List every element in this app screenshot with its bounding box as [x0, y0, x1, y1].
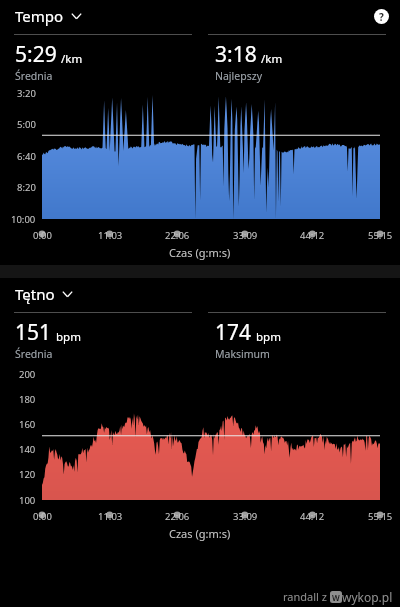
staticText: ? — [379, 10, 384, 24]
staticText: Najlepszy — [215, 69, 262, 83]
button[interactable]: Tempo — [0, 4, 92, 28]
staticText: bpm — [256, 329, 281, 345]
staticText: 200 — [19, 368, 36, 381]
staticText: 151 — [15, 318, 52, 347]
staticText: randall z — [283, 589, 330, 604]
staticText: 44:12 — [300, 510, 325, 523]
button[interactable]: Tętno — [0, 282, 83, 306]
staticText: 33:09 — [233, 229, 258, 242]
staticText: 160 — [19, 418, 36, 431]
staticText: 0:00 — [33, 229, 52, 242]
staticText: 5:00 — [17, 118, 36, 131]
staticText: 140 — [19, 443, 36, 456]
staticText: 22:06 — [165, 510, 190, 523]
staticText: 5:29 — [15, 40, 57, 69]
staticText: Tętno — [15, 284, 55, 304]
staticText: 55:15 — [368, 229, 393, 242]
staticText: 174 — [215, 318, 252, 347]
staticText: Czas (g:m:s) — [169, 526, 231, 541]
staticText: Czas (g:m:s) — [169, 245, 231, 260]
staticText: 55:15 — [368, 510, 393, 523]
staticText: /km — [261, 51, 283, 67]
staticText: W — [332, 592, 340, 603]
staticText: 100 — [19, 494, 36, 507]
staticText: 6:40 — [17, 150, 36, 163]
staticText: /km — [61, 51, 83, 67]
staticText: bpm — [56, 329, 81, 345]
staticText: 22:06 — [165, 229, 190, 242]
staticText: Średnia — [15, 69, 53, 83]
staticText: 120 — [19, 468, 36, 481]
button[interactable]: Help — [368, 3, 394, 29]
staticText: Tempo — [15, 6, 64, 26]
staticText: 10:00 — [11, 213, 36, 226]
staticText: 33:09 — [233, 510, 258, 523]
staticText: 8:20 — [17, 181, 36, 194]
staticText: 11:03 — [98, 229, 123, 242]
staticText: 180 — [19, 393, 36, 406]
staticText: 0:00 — [33, 510, 52, 523]
staticText: 3:20 — [17, 87, 36, 100]
staticText: wykop.pl — [342, 589, 393, 605]
staticText: Średnia — [15, 347, 53, 361]
staticText: 3:18 — [215, 40, 257, 69]
staticText: 11:03 — [98, 510, 123, 523]
staticText: 44:12 — [300, 229, 325, 242]
staticText: Maksimum — [215, 347, 270, 361]
